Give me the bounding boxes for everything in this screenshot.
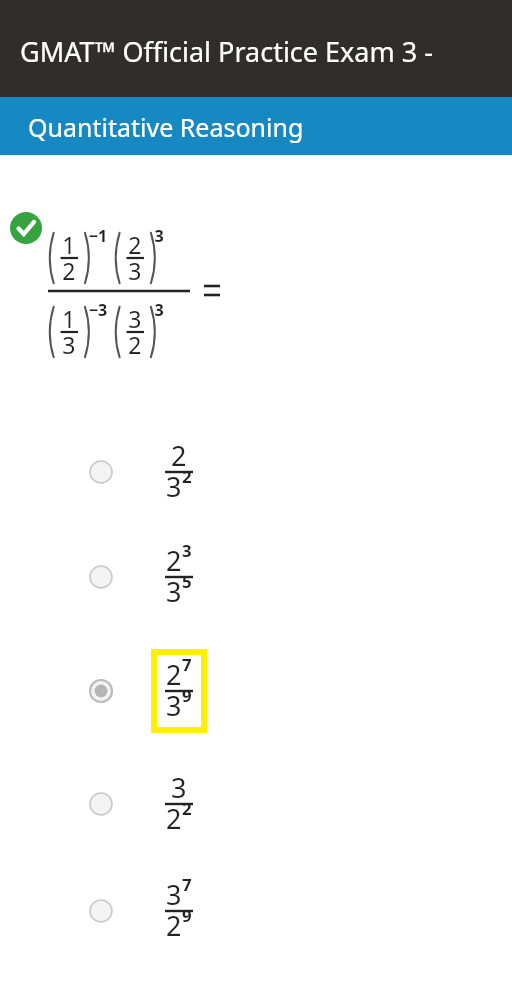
button[interactable]: 3 over 2 squared <box>80 769 240 841</box>
staticText: GMAT™ Official Practice Exam 3 - <box>20 33 433 70</box>
staticText: Quantitative Reasoning <box>28 110 304 144</box>
button[interactable]: GMAT™ Official Practice Exam 3 - <box>0 0 512 97</box>
button[interactable]: Quantitative Reasoning <box>0 97 512 155</box>
button[interactable]: 2 to the 7 over 3 to the 9 <box>80 651 240 747</box>
button[interactable]: 2 cubed over 3 to the 5 <box>80 542 240 614</box>
button[interactable]: 3 to the 7 over 2 to the 9 <box>80 876 240 948</box>
button[interactable]: Correct answer <box>8 212 40 244</box>
button[interactable]: 2 over 3 squared <box>80 437 240 509</box>
